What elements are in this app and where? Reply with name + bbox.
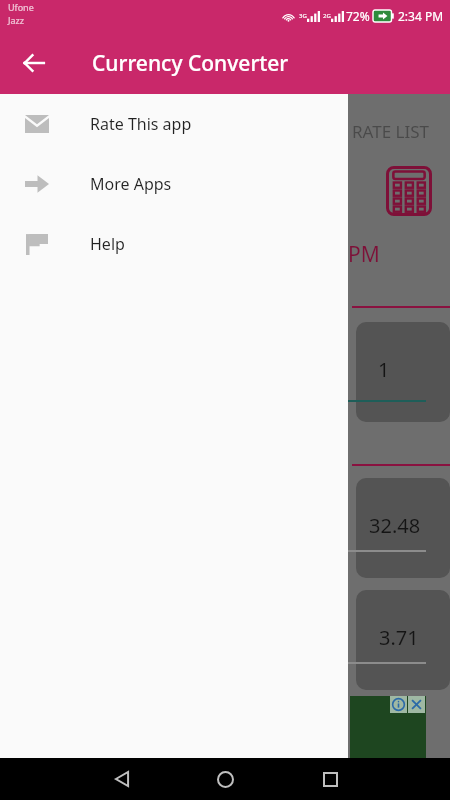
button[interactable]: Rate This app: [0, 94, 348, 154]
staticText: Jazz: [8, 14, 24, 26]
staticText: PM: [348, 240, 380, 269]
staticText: 32.48: [369, 512, 421, 539]
staticText: More Apps: [90, 173, 172, 195]
button[interactable]: Back: [100, 758, 144, 800]
staticText: 2G: [323, 12, 331, 20]
button[interactable]: Help: [0, 214, 348, 274]
staticText: 1: [378, 356, 390, 383]
staticText: Currency Converter: [92, 49, 289, 78]
button[interactable]: Recent apps: [308, 758, 352, 800]
staticText: Ufone: [8, 1, 34, 13]
staticText: 3.71: [379, 624, 419, 651]
staticText: 72%: [346, 8, 370, 24]
staticText: 3G: [299, 12, 307, 20]
staticText: Help: [90, 233, 125, 255]
button[interactable]: Ad info: [390, 696, 407, 713]
button[interactable]: More Apps: [0, 154, 348, 214]
staticText: 2:34 PM: [398, 8, 444, 24]
button[interactable]: Back: [10, 39, 58, 87]
staticText: RATE LIST: [352, 120, 430, 143]
button[interactable]: Close ad: [408, 696, 425, 713]
staticText: Rate This app: [90, 113, 192, 135]
button[interactable]: Home: [203, 758, 247, 800]
